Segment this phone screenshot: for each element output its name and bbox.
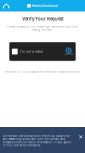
staticText: I'm not a robot	[20, 50, 43, 53]
button[interactable]: Home	[0, 0, 14, 11]
staticText: Request ID: 5532BaBc-88d1-11ef-bc92-9a3b…	[4, 70, 80, 73]
button[interactable]: Dismiss cookie notice	[79, 133, 85, 139]
staticText: Our service uses cookies for technical, …	[3, 134, 72, 147]
staticText: HotelsCombined	[32, 4, 58, 8]
button[interactable]: HotelsCombined home	[27, 0, 58, 11]
button[interactable]: I'm not a robot	[9, 42, 75, 61]
staticText: reCAPTCHA	[64, 53, 73, 55]
staticText: Verify Your Request	[22, 16, 63, 21]
staticText: Please complete the challenge below to c…	[6, 25, 78, 31]
